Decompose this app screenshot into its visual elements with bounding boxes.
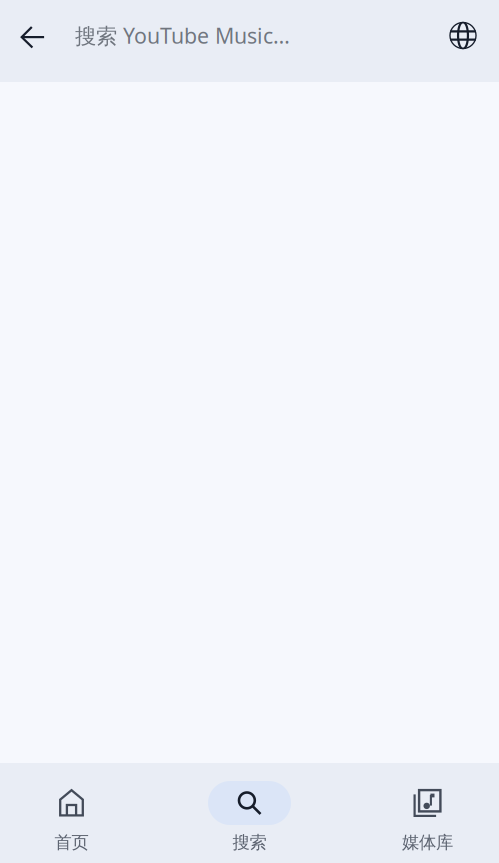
button[interactable]: 搜索 — [208, 763, 291, 863]
button[interactable]: 选择语言 — [435, 7, 491, 63]
button[interactable]: 搜索 YouTube Music… — [61, 4, 435, 66]
button[interactable]: 首页 — [30, 763, 113, 863]
staticText: 媒体库 — [402, 832, 453, 853]
button[interactable]: 媒体库 — [386, 763, 469, 863]
staticText: 搜索 YouTube Music… — [75, 21, 290, 50]
staticText: 搜索 — [232, 832, 266, 853]
staticText: 首页 — [54, 832, 88, 853]
button[interactable]: 返回 — [5, 7, 61, 63]
